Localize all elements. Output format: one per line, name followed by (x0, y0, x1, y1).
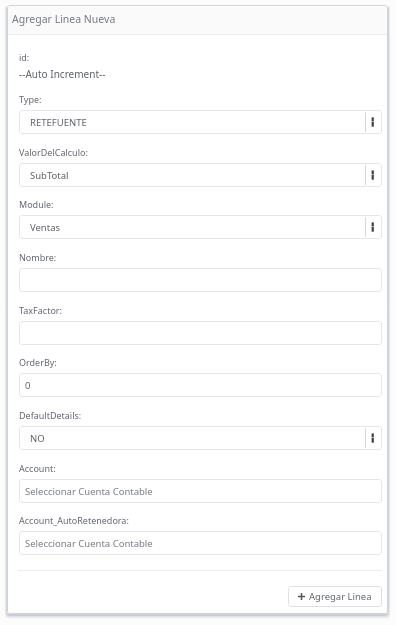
button[interactable]: TaxFactor text field (19, 321, 382, 345)
button[interactable]: ValorDelCalculo dropdown, SubTotal (19, 163, 382, 187)
staticText: DefaultDetails: (19, 409, 82, 421)
button[interactable]: OrderBy text field (19, 373, 382, 397)
staticText: NO (30, 432, 45, 445)
staticText: SubTotal (30, 169, 69, 182)
button[interactable]: Agregar Linea (288, 586, 382, 607)
staticText: Seleccionar Cuenta Contable (25, 537, 153, 550)
staticText: Type: (19, 93, 42, 105)
staticText: Seleccionar Cuenta Contable (25, 485, 153, 498)
staticText: RETEFUENTE (30, 116, 87, 129)
button[interactable]: Account text field (19, 479, 382, 503)
staticText: 0 (25, 379, 31, 392)
staticText: ValorDelCalculo: (19, 146, 88, 158)
staticText: --Auto Increment-- (19, 67, 106, 81)
staticText: Agregar Linea Nueva (12, 12, 116, 26)
staticText: Module: (19, 198, 54, 210)
button[interactable]: Account_AutoRetenedora text field (19, 531, 382, 555)
staticText: Account: (19, 462, 56, 474)
staticText: Account_AutoRetenedora: (19, 514, 129, 526)
staticText: id: (19, 51, 30, 63)
staticText: TaxFactor: (19, 304, 62, 316)
staticText: OrderBy: (19, 356, 57, 368)
staticText: Agregar Linea (309, 590, 372, 603)
button[interactable]: DefaultDetails dropdown, NO (19, 426, 382, 450)
button[interactable]: Type dropdown, RETEFUENTE (19, 110, 382, 134)
button[interactable]: Nombre text field (19, 268, 382, 292)
button[interactable]: Module dropdown, Ventas (19, 215, 382, 239)
staticText: Nombre: (19, 251, 57, 263)
staticText: Ventas (30, 221, 61, 234)
